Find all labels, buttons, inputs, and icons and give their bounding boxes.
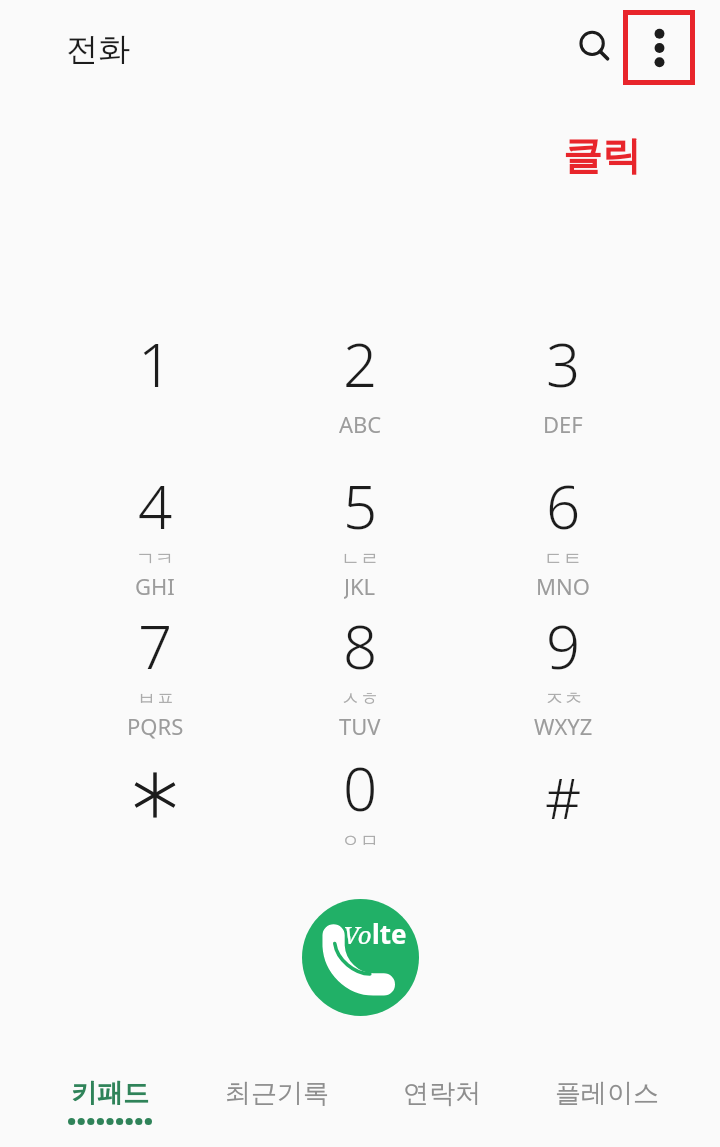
button[interactable]: 연락처 <box>360 1061 524 1147</box>
staticText: WXYZ <box>534 711 593 739</box>
staticText: 전화 <box>66 29 130 69</box>
button[interactable]: Call <box>302 899 419 1016</box>
staticText: 클릭 <box>563 131 641 180</box>
button[interactable]: 9 <box>463 605 663 739</box>
staticText: DEF <box>543 409 583 439</box>
staticText: 4 <box>138 465 173 547</box>
button[interactable]: 2 <box>260 323 460 457</box>
staticText: 3 <box>546 323 581 405</box>
staticText: ㅈㅊ <box>545 687 583 711</box>
staticText: ㅅㅎ <box>341 687 379 711</box>
staticText: PQRS <box>127 711 184 739</box>
staticText: ABC <box>339 409 382 439</box>
button[interactable]: 8 <box>260 605 460 739</box>
staticText: lte <box>372 916 407 951</box>
staticText: 0 <box>343 747 378 829</box>
staticText: ㅂㅍ <box>137 687 175 711</box>
button[interactable]: 6 <box>463 465 663 599</box>
staticText: 8 <box>343 605 378 687</box>
button[interactable]: 최근기록 <box>195 1061 359 1147</box>
staticText: JKL <box>344 571 376 599</box>
button[interactable]: 전화 <box>28 20 168 78</box>
staticText: ㄷㅌ <box>544 547 582 571</box>
staticText: Vo <box>343 918 372 951</box>
button[interactable]: 플레이스 <box>525 1061 689 1147</box>
staticText: 9 <box>546 605 581 687</box>
staticText: 1 <box>138 323 173 405</box>
staticText: 최근기록 <box>225 1077 329 1110</box>
button[interactable]: 5 <box>260 465 460 599</box>
staticText: TUV <box>339 711 381 739</box>
staticText: # <box>545 759 582 835</box>
button[interactable]: 키패드 <box>28 1061 192 1147</box>
staticText: MNO <box>536 571 590 599</box>
button[interactable]: 0 <box>260 747 460 881</box>
button[interactable]: 3 <box>463 323 663 457</box>
button[interactable]: # <box>463 747 663 881</box>
button[interactable]: More options <box>623 10 695 85</box>
button[interactable]: Search <box>566 18 624 76</box>
staticText: 플레이스 <box>555 1077 659 1110</box>
staticText: ㄱㅋ <box>136 547 174 571</box>
staticText: ㅇㅁ <box>341 829 379 853</box>
button[interactable] <box>55 747 255 881</box>
staticText: GHI <box>135 571 175 599</box>
staticText: 5 <box>343 465 378 547</box>
button[interactable]: 4 <box>55 465 255 599</box>
staticText: 7 <box>138 605 173 687</box>
button[interactable]: 1 <box>55 323 255 457</box>
staticText: 연락처 <box>403 1077 481 1110</box>
staticText: ㄴㄹ <box>341 547 379 571</box>
staticText: 2 <box>343 323 378 405</box>
staticText: 키패드 <box>71 1077 149 1110</box>
button[interactable]: 7 <box>55 605 255 739</box>
staticText: 6 <box>546 465 581 547</box>
